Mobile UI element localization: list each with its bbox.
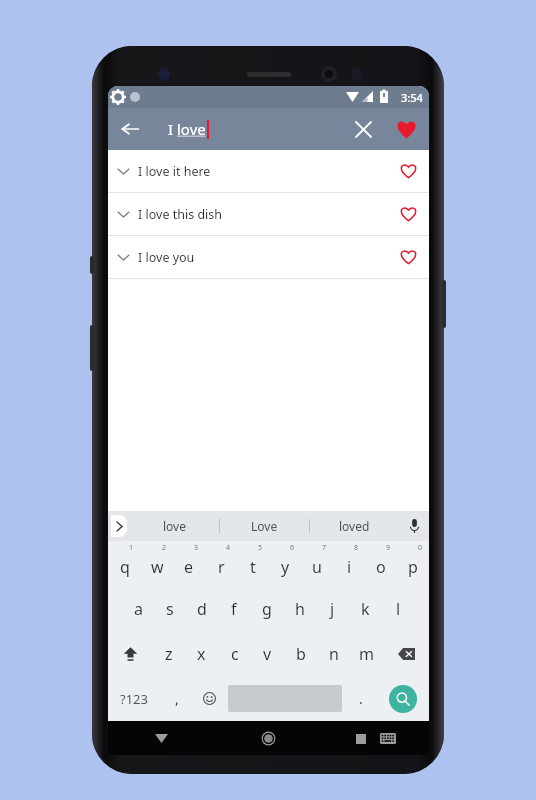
staticText: f [231, 598, 237, 620]
staticText: y [281, 556, 290, 578]
staticText: I love this dish [138, 206, 223, 223]
staticText: t [250, 556, 256, 578]
staticText: m [359, 643, 374, 665]
staticText: r [218, 556, 225, 578]
staticText: , [175, 689, 179, 708]
staticText: 3 [194, 543, 199, 553]
button[interactable]: d [186, 586, 218, 631]
button[interactable]: Emoji [193, 676, 226, 721]
staticText: h [295, 598, 305, 620]
staticText: v [263, 643, 272, 665]
staticText: d [197, 598, 207, 620]
button[interactable]: Search [389, 685, 417, 713]
button[interactable]: 6 [269, 541, 301, 586]
staticText: s [166, 598, 174, 620]
button[interactable]: z [153, 631, 185, 676]
staticText: u [312, 556, 322, 578]
staticText: 3:54 [401, 90, 423, 105]
button[interactable]: ?123 [108, 676, 160, 721]
staticText: Love [251, 518, 278, 534]
staticText: z [165, 643, 173, 665]
staticText: q [120, 556, 130, 578]
button[interactable]: I love it here [108, 150, 429, 192]
button[interactable]: b [284, 631, 317, 676]
button[interactable]: 3 [173, 541, 205, 586]
staticText: 2 [162, 543, 167, 553]
button[interactable]: 8 [333, 541, 365, 586]
button[interactable]: . [344, 676, 377, 721]
button[interactable]: love [130, 511, 219, 541]
staticText: 1 [129, 543, 134, 553]
button[interactable]: s [154, 586, 186, 631]
button[interactable]: 2 [141, 541, 173, 586]
staticText: x [197, 643, 206, 665]
button[interactable]: v [251, 631, 284, 676]
staticText: 7 [322, 543, 327, 553]
button[interactable]: Add to favorites [387, 236, 429, 278]
staticText: 8 [354, 543, 359, 553]
button[interactable]: g [250, 586, 283, 631]
staticText: a [134, 598, 143, 620]
button[interactable]: Back [108, 108, 152, 150]
button[interactable]: 9 [365, 541, 397, 586]
button[interactable]: x [185, 631, 218, 676]
button[interactable]: , [160, 676, 193, 721]
staticText: I love it here [138, 163, 211, 180]
button[interactable]: c [218, 631, 251, 676]
button[interactable]: f [218, 586, 250, 631]
staticText: I [168, 119, 177, 139]
staticText: w [151, 556, 164, 578]
button[interactable]: a [122, 586, 154, 631]
button[interactable]: Switch keyboard [380, 733, 396, 744]
staticText: b [296, 643, 306, 665]
staticText: ?123 [120, 690, 148, 708]
staticText: . [359, 689, 363, 708]
button[interactable]: Shift [108, 631, 153, 676]
button[interactable]: Add to favorites [387, 150, 429, 192]
button[interactable]: m [350, 631, 383, 676]
staticText: g [262, 598, 272, 620]
button[interactable]: I love you [108, 236, 429, 278]
button[interactable]: 4 [205, 541, 237, 586]
button[interactable]: Favorites [385, 108, 427, 150]
staticText: n [329, 643, 339, 665]
button[interactable]: h [283, 586, 316, 631]
staticText: 5 [258, 543, 263, 553]
button[interactable]: 7 [301, 541, 333, 586]
button[interactable]: 0 [397, 541, 429, 586]
button[interactable]: Clear [341, 108, 385, 150]
staticText: 0 [418, 543, 423, 553]
button[interactable]: k [349, 586, 382, 631]
button[interactable]: 1 [108, 541, 141, 586]
staticText: k [361, 598, 370, 620]
button[interactable]: n [317, 631, 350, 676]
button[interactable]: loved [310, 511, 399, 541]
button[interactable]: Back [108, 721, 215, 755]
button[interactable]: Backspace [383, 631, 429, 676]
button[interactable]: More suggestions [108, 511, 130, 541]
staticText: c [231, 643, 239, 665]
staticText: love [177, 119, 206, 139]
button[interactable]: Add to favorites [387, 193, 429, 235]
staticText: love [163, 518, 186, 534]
staticText: i [347, 556, 352, 578]
staticText: o [376, 556, 386, 578]
staticText: l [396, 598, 401, 620]
button[interactable]: Voice input [399, 511, 429, 541]
staticText: 6 [290, 543, 295, 553]
staticText: loved [339, 518, 370, 534]
staticText: p [408, 556, 418, 578]
staticText: j [330, 598, 335, 620]
button[interactable]: l [382, 586, 415, 631]
staticText: e [184, 556, 194, 578]
button[interactable]: I love this dish [108, 193, 429, 235]
button[interactable]: Love [220, 511, 309, 541]
button[interactable]: j [316, 586, 349, 631]
button[interactable]: Home [215, 721, 322, 755]
staticText: 4 [226, 543, 231, 553]
staticText: I love you [138, 249, 195, 266]
button[interactable]: 5 [237, 541, 269, 586]
staticText: 9 [386, 543, 391, 553]
